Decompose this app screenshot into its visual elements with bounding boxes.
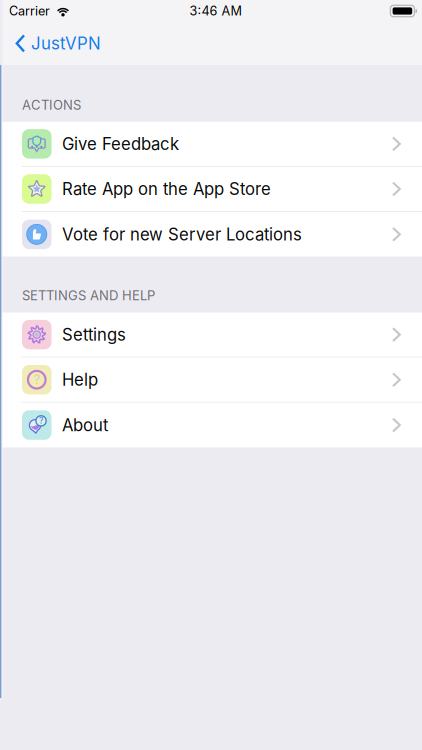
- staticText: Settings: [62, 324, 126, 345]
- button[interactable]: Give Feedback: [0, 122, 422, 167]
- button[interactable]: ?: [0, 358, 422, 403]
- button[interactable]: Rate App on the App Store: [0, 167, 422, 212]
- staticText: ?: [39, 415, 43, 426]
- staticText: Help: [62, 370, 98, 390]
- staticText: SETTINGS AND HELP: [22, 288, 155, 303]
- staticText: Rate App on the App Store: [62, 179, 271, 199]
- button[interactable]: Vote for new Server Locations: [0, 212, 422, 257]
- button[interactable]: JustVPN: [0, 22, 109, 65]
- staticText: ?: [34, 372, 40, 387]
- staticText: ACTIONS: [22, 97, 81, 113]
- button[interactable]: Settings: [0, 312, 422, 358]
- staticText: Carrier: [9, 3, 50, 19]
- staticText: About: [62, 415, 108, 435]
- staticText: Give Feedback: [62, 134, 179, 154]
- staticText: 3:46 AM: [189, 3, 241, 19]
- staticText: JustVPN: [31, 33, 101, 54]
- button[interactable]: ?: [0, 403, 422, 447]
- staticText: Vote for new Server Locations: [62, 224, 302, 244]
